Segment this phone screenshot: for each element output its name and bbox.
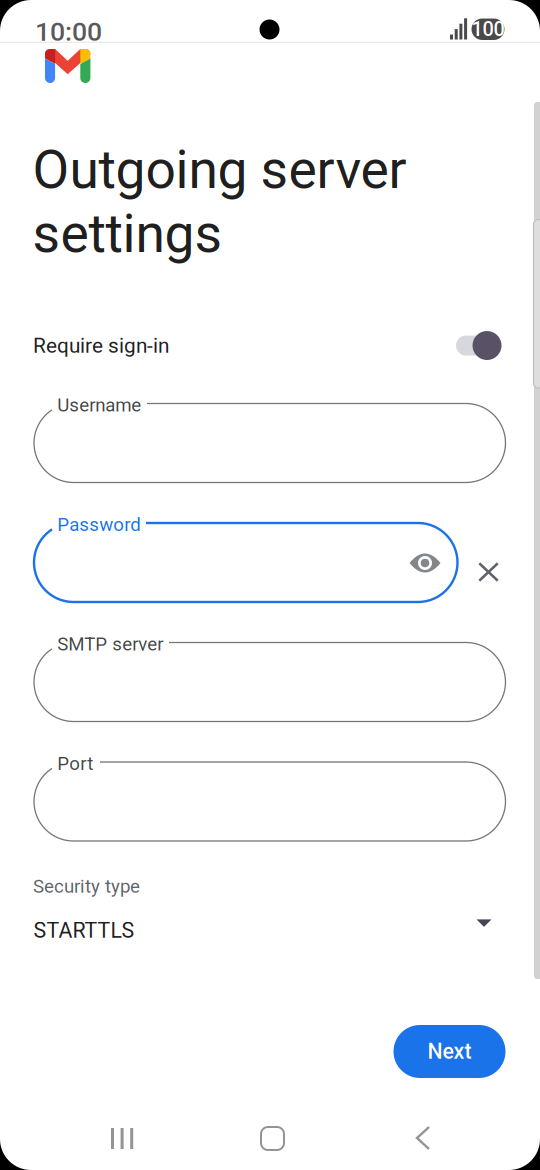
button[interactable]: Clear password: [478, 562, 499, 582]
staticText: Username: [57, 394, 141, 416]
staticText: settings: [32, 202, 222, 265]
staticText: Next: [427, 1039, 471, 1064]
button[interactable]: Require sign-in: [33, 317, 507, 377]
button[interactable]: Home: [261, 1127, 284, 1150]
button[interactable]: Show password: [409, 552, 441, 574]
staticText: Password: [57, 514, 141, 536]
button[interactable]: Recent apps: [111, 1128, 133, 1149]
button[interactable]: Back: [416, 1127, 431, 1150]
staticText: Outgoing server: [32, 138, 406, 201]
staticText: Security type: [33, 875, 140, 897]
staticText: Port: [57, 753, 93, 775]
staticText: STARTTLS: [33, 918, 134, 943]
staticText: Require sign-in: [33, 333, 169, 358]
staticText: 100: [471, 17, 504, 41]
staticText: SMTP server: [57, 633, 163, 655]
button[interactable]: Next: [393, 1025, 505, 1078]
staticText: 10:00: [35, 16, 102, 47]
button[interactable]: Security type: [33, 866, 507, 962]
